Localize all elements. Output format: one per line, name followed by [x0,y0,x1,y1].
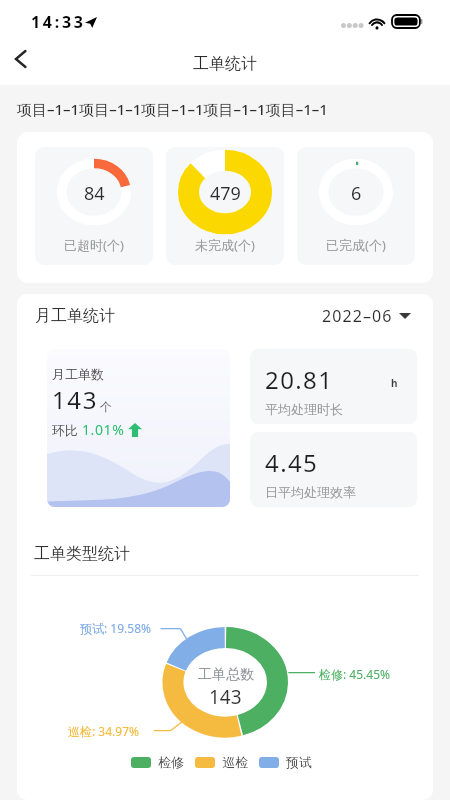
staticText: 检修: 45.45% [319,666,390,682]
button[interactable]: 20.81 [250,349,417,424]
staticText: 检修 [158,754,184,770]
button[interactable]: 479 [166,147,284,265]
staticText: 4.45 [265,446,319,479]
staticText: 巡检: 34.97% [68,723,139,739]
button[interactable]: 84 [35,147,153,265]
staticText: 月工单统计 [35,306,115,326]
button[interactable]: Back [3,42,37,76]
staticText: 143 [209,684,242,710]
staticText: h [391,376,398,390]
staticText: 个 [100,399,112,414]
staticText: 1.01% [82,420,125,439]
staticText: 14:33 [31,11,86,33]
staticText: 日平均处理效率 [265,484,356,500]
staticText: 已完成(个) [326,236,386,254]
staticText: 工单类型统计 [34,544,130,564]
staticText: 巡检 [222,754,248,770]
staticText: 6 [351,181,362,206]
staticText: 已超时(个) [64,236,124,254]
button[interactable]: 巡检 [195,754,248,770]
staticText: 20.81 [265,363,334,396]
staticText: 预试 [286,754,312,770]
staticText: 84 [84,181,105,206]
staticText: 479 [210,181,241,206]
staticText: 预试: 19.58% [80,620,151,636]
button[interactable]: 月工单数 [47,349,230,507]
button[interactable]: 2022–06 [318,301,415,331]
staticText: 工单统计 [193,54,257,74]
staticText: 项目–1–1项目–1–1项目–1–1项目–1–1项目–1–1 [17,99,328,119]
button[interactable]: 4.45 [250,432,417,507]
button[interactable]: 6 [297,147,415,265]
staticText: 2022–06 [322,305,393,327]
staticText: 月工单数 [52,366,104,382]
staticText: 平均处理时长 [265,401,343,417]
staticText: 工单总数 [198,666,254,684]
button[interactable]: 预试 [259,754,312,770]
staticText: 环比 [52,421,82,439]
staticText: 143 [52,383,98,416]
button[interactable]: 检修 [131,754,184,770]
staticText: 未完成(个) [195,236,255,254]
